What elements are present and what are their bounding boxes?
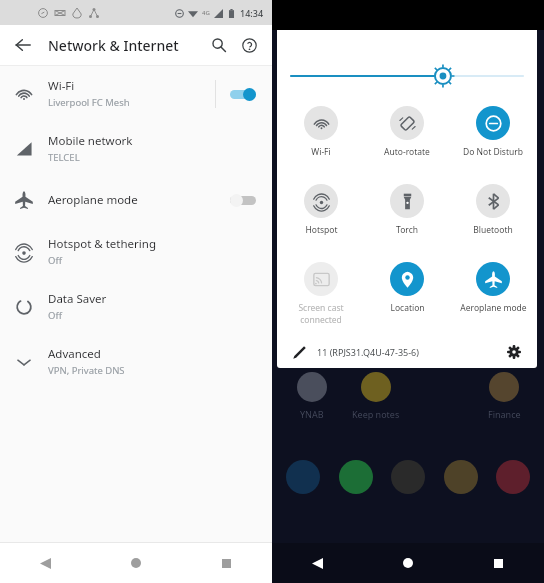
staticText: 14:34 bbox=[240, 7, 264, 19]
staticText: Auto-rotate bbox=[384, 146, 430, 158]
button[interactable]: App bbox=[444, 460, 478, 494]
button[interactable]: Do Not Disturb bbox=[451, 106, 535, 158]
staticText: Do Not Disturb bbox=[463, 146, 523, 158]
staticText: Aeroplane mode bbox=[48, 192, 138, 208]
button[interactable]: Wi-Fi bbox=[0, 66, 272, 121]
button[interactable]: Bluetooth bbox=[451, 184, 535, 236]
staticText: Location bbox=[390, 302, 425, 314]
staticText: Advanced bbox=[48, 346, 101, 362]
staticText: Mobile network bbox=[48, 133, 133, 149]
button[interactable]: Home bbox=[90, 543, 181, 583]
button[interactable]: Data Saver bbox=[0, 279, 272, 334]
staticText: Keep notes bbox=[352, 408, 400, 420]
staticText: Finance bbox=[488, 408, 521, 420]
button[interactable]: Hotspot bbox=[279, 184, 363, 236]
staticText: Network & Internet bbox=[48, 36, 179, 55]
button[interactable]: App bbox=[496, 460, 530, 494]
button[interactable]: Aeroplane mode bbox=[451, 262, 535, 314]
button[interactable]: Screen cast connected bbox=[279, 262, 363, 326]
button[interactable]: Back bbox=[0, 543, 90, 583]
button[interactable]: Auto-rotate bbox=[365, 106, 449, 158]
staticText: 11 (RPJS31.Q4U-47-35-6) bbox=[317, 346, 419, 358]
button[interactable]: Recents bbox=[181, 543, 272, 583]
button[interactable]: App bbox=[339, 460, 373, 494]
staticText: Aeroplane mode bbox=[460, 302, 527, 314]
staticText: Wi-Fi bbox=[311, 146, 331, 158]
button[interactable]: Mobile network bbox=[0, 121, 272, 176]
button[interactable]: Help bbox=[234, 30, 264, 60]
button[interactable]: Recents bbox=[453, 543, 544, 583]
button[interactable]: App bbox=[286, 460, 320, 494]
staticText: TELCEL bbox=[48, 151, 80, 164]
button[interactable]: Search bbox=[204, 30, 234, 60]
button[interactable]: Edit bbox=[289, 342, 309, 362]
staticText: 4G bbox=[202, 9, 210, 17]
button[interactable]: Location bbox=[365, 262, 449, 314]
staticText: Hotspot bbox=[305, 224, 338, 236]
button[interactable]: Finance bbox=[476, 372, 532, 420]
staticText: Off bbox=[48, 309, 62, 322]
button[interactable]: Back bbox=[8, 30, 38, 60]
staticText: Wi-Fi bbox=[48, 78, 75, 94]
button[interactable] bbox=[230, 193, 256, 207]
button[interactable]: Settings bbox=[503, 341, 525, 363]
button[interactable]: Torch bbox=[365, 184, 449, 236]
button[interactable]: Home bbox=[362, 543, 453, 583]
button[interactable]: Brightness bbox=[277, 66, 537, 86]
staticText: Off bbox=[48, 254, 62, 267]
staticText: Liverpool FC Mesh bbox=[48, 96, 130, 109]
button[interactable]: App bbox=[391, 460, 425, 494]
button[interactable]: Keep notes bbox=[348, 372, 404, 420]
staticText: VPN, Private DNS bbox=[48, 364, 125, 377]
button[interactable]: YNAB bbox=[284, 372, 340, 420]
staticText: YNAB bbox=[300, 408, 324, 420]
button[interactable]: Advanced bbox=[0, 334, 272, 389]
button[interactable]: Back bbox=[272, 543, 362, 583]
staticText: Data Saver bbox=[48, 291, 107, 307]
staticText: Torch bbox=[396, 224, 418, 236]
button[interactable]: Aeroplane mode bbox=[0, 176, 272, 224]
staticText: Bluetooth bbox=[473, 224, 513, 236]
staticText: Hotspot & tethering bbox=[48, 236, 156, 252]
button[interactable]: Hotspot & tethering bbox=[0, 224, 272, 279]
button[interactable] bbox=[230, 87, 256, 101]
button[interactable]: Wi-Fi bbox=[279, 106, 363, 158]
staticText: Screen cast connected bbox=[298, 302, 344, 326]
